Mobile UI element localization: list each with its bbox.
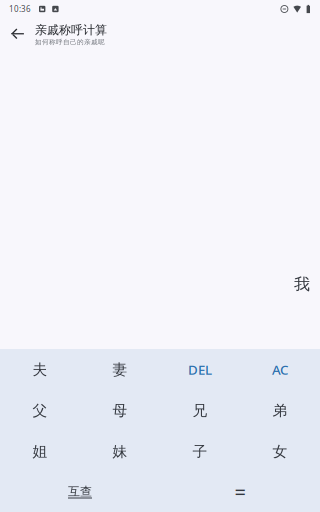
button[interactable]: 姐	[0, 431, 80, 472]
staticText: 亲戚称呼计算	[35, 23, 107, 37]
staticText: 母	[112, 401, 127, 419]
button[interactable]: 互查	[0, 472, 160, 512]
staticText: =	[234, 479, 245, 505]
staticText: 女	[272, 442, 287, 460]
button[interactable]: 妻	[80, 349, 160, 390]
staticText: 弟	[272, 401, 287, 419]
staticText: 兄	[192, 401, 207, 419]
button[interactable]: 兄	[160, 390, 240, 431]
staticText: 互查	[68, 484, 92, 499]
staticText: 我	[294, 274, 310, 294]
button[interactable]: 母	[80, 390, 160, 431]
staticText: 子	[192, 442, 207, 460]
staticText: 父	[32, 401, 47, 419]
staticText: 10:36	[9, 4, 31, 14]
staticText: 姐	[32, 442, 47, 460]
button[interactable]: 子	[160, 431, 240, 472]
button[interactable]: 弟	[240, 390, 320, 431]
staticText: AC	[272, 361, 288, 378]
button[interactable]: 夫	[0, 349, 80, 390]
button[interactable]: =	[160, 472, 320, 512]
staticText: 妻	[112, 360, 127, 378]
staticText: 如何称呼自己的亲戚呢	[35, 38, 105, 46]
button[interactable]: AC	[240, 349, 320, 390]
button[interactable]: Back	[5, 18, 30, 50]
button[interactable]: DEL	[160, 349, 240, 390]
staticText: DEL	[188, 361, 212, 378]
button[interactable]: 女	[240, 431, 320, 472]
staticText: 夫	[32, 360, 47, 378]
button[interactable]: 妹	[80, 431, 160, 472]
staticText: 妹	[112, 442, 127, 460]
button[interactable]: 父	[0, 390, 80, 431]
